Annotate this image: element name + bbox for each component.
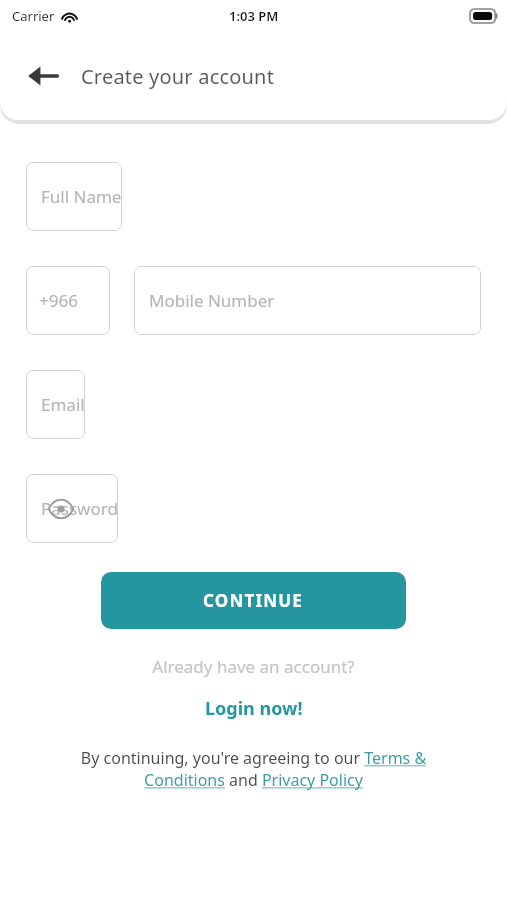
staticText: Carrier bbox=[12, 7, 55, 25]
button[interactable]: Full Name bbox=[26, 162, 122, 231]
button[interactable]: Email bbox=[26, 370, 85, 439]
staticText: Email bbox=[41, 393, 85, 416]
staticText: Full Name bbox=[41, 185, 122, 208]
button[interactable]: Login now! bbox=[197, 694, 311, 723]
staticText: Already have an account? bbox=[0, 655, 507, 678]
staticText: Login now! bbox=[205, 696, 303, 721]
staticText: 1:03 PM bbox=[229, 7, 279, 25]
button[interactable]: Mobile Number bbox=[134, 266, 481, 335]
staticText: Password bbox=[41, 497, 118, 520]
staticText: Create your account bbox=[81, 63, 275, 90]
staticText: By continuing, you're agreeing to our Te… bbox=[48, 747, 459, 791]
button[interactable]: +966 bbox=[26, 266, 110, 335]
button[interactable]: By continuing, you're agreeing to our Te… bbox=[48, 747, 459, 791]
staticText: CONTINUE bbox=[203, 589, 304, 612]
button[interactable]: Back bbox=[22, 55, 64, 97]
button[interactable]: Show password bbox=[44, 492, 78, 526]
staticText: Mobile Number bbox=[149, 289, 275, 312]
button[interactable]: CONTINUE bbox=[101, 572, 406, 629]
button[interactable]: Password bbox=[26, 474, 118, 543]
staticText: +966 bbox=[39, 289, 78, 312]
